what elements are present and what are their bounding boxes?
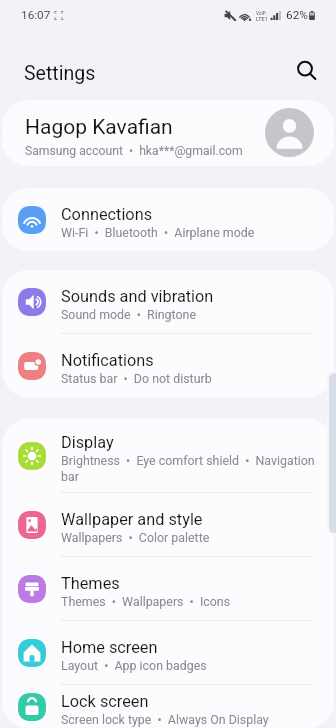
staticText: Samsung account • hka***@gmail.com bbox=[25, 144, 243, 158]
staticText: Display bbox=[61, 433, 114, 452]
button[interactable]: Themes bbox=[2, 557, 334, 620]
staticText: Wi-Fi • Bluetooth • Airplane mode bbox=[61, 225, 255, 240]
staticText: Status bar • Do not disturb bbox=[61, 371, 212, 386]
staticText: Wallpapers • Color palette bbox=[61, 530, 210, 545]
staticText: Wallpaper and style bbox=[61, 510, 203, 529]
button[interactable]: Wallpaper and style bbox=[2, 493, 334, 556]
button[interactable]: Notifications bbox=[2, 334, 334, 397]
staticText: Layout • App icon badges bbox=[61, 658, 207, 673]
staticText: Hagop Kavafian bbox=[25, 115, 173, 140]
button[interactable]: Sounds and vibration bbox=[2, 270, 334, 333]
staticText: 16:07 bbox=[21, 8, 51, 22]
button[interactable]: Hagop Kavafian bbox=[2, 100, 334, 166]
button[interactable]: Lock screen bbox=[2, 685, 334, 728]
staticText: Screen lock type • Always On Display bbox=[61, 712, 269, 727]
staticText: Sound mode • Ringtone bbox=[61, 307, 196, 322]
staticText: Lock screen bbox=[61, 692, 149, 711]
button[interactable]: Display bbox=[2, 419, 334, 492]
staticText: Notifications bbox=[61, 351, 154, 370]
staticText: Connections bbox=[61, 205, 153, 224]
button[interactable]: Search bbox=[290, 54, 324, 88]
staticText: LTE1 bbox=[256, 16, 268, 23]
staticText: Home screen bbox=[61, 638, 158, 657]
staticText: 62% bbox=[286, 8, 308, 22]
staticText: VoIP bbox=[256, 11, 266, 16]
staticText: Themes • Wallpapers • Icons bbox=[61, 594, 231, 609]
staticText: Themes bbox=[61, 574, 120, 593]
button[interactable]: Home screen bbox=[2, 621, 334, 684]
staticText: Settings bbox=[24, 62, 96, 85]
staticText: Brightness • Eye comfort shield • Naviga… bbox=[61, 453, 317, 484]
staticText: Sounds and vibration bbox=[61, 287, 214, 306]
button[interactable]: Connections bbox=[2, 188, 334, 251]
